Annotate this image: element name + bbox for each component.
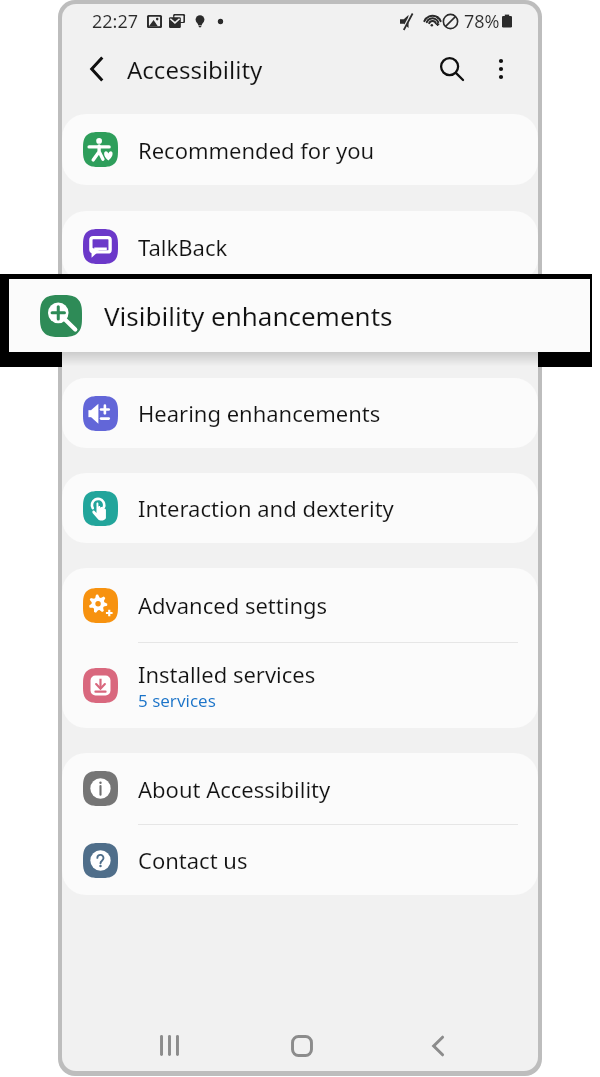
staticText: Recommended for you — [138, 135, 375, 165]
staticText: Installed services — [138, 659, 316, 689]
button[interactable]: Recent apps — [141, 1020, 197, 1071]
staticText: Advanced settings — [138, 590, 328, 620]
button[interactable]: Visibility enhancements — [9, 279, 590, 352]
staticText: About Accessibility — [138, 774, 331, 804]
staticText: 22:27 — [92, 9, 139, 34]
staticText: Visibility enhancements — [104, 298, 393, 333]
staticText: Hearing enhancements — [138, 398, 381, 428]
button[interactable]: Back — [72, 44, 122, 94]
staticText: TalkBack — [138, 232, 228, 262]
button[interactable]: Interaction and dexterity — [62, 473, 538, 543]
button[interactable]: About Accessibility — [62, 753, 538, 824]
button[interactable]: Back — [410, 1020, 466, 1071]
staticText: Contact us — [138, 845, 248, 875]
button[interactable]: More options — [476, 44, 526, 94]
button[interactable]: Visibility enhancements — [62, 308, 538, 379]
button[interactable]: Advanced settings — [62, 568, 538, 642]
button[interactable]: Installed services — [62, 643, 538, 728]
button[interactable]: Hearing enhancements — [62, 378, 538, 448]
staticText: 78% — [464, 9, 500, 34]
staticText: 5 services — [138, 689, 216, 712]
button[interactable]: Recommended for you — [62, 114, 538, 185]
button[interactable]: Search — [427, 44, 477, 94]
button[interactable]: Home — [274, 1020, 330, 1071]
staticText: Interaction and dexterity — [138, 493, 394, 523]
staticText: Visibility enhancements — [138, 329, 383, 359]
button[interactable]: TalkBack — [62, 211, 538, 282]
staticText: Accessibility — [127, 53, 263, 86]
button[interactable]: Contact us — [62, 825, 538, 895]
